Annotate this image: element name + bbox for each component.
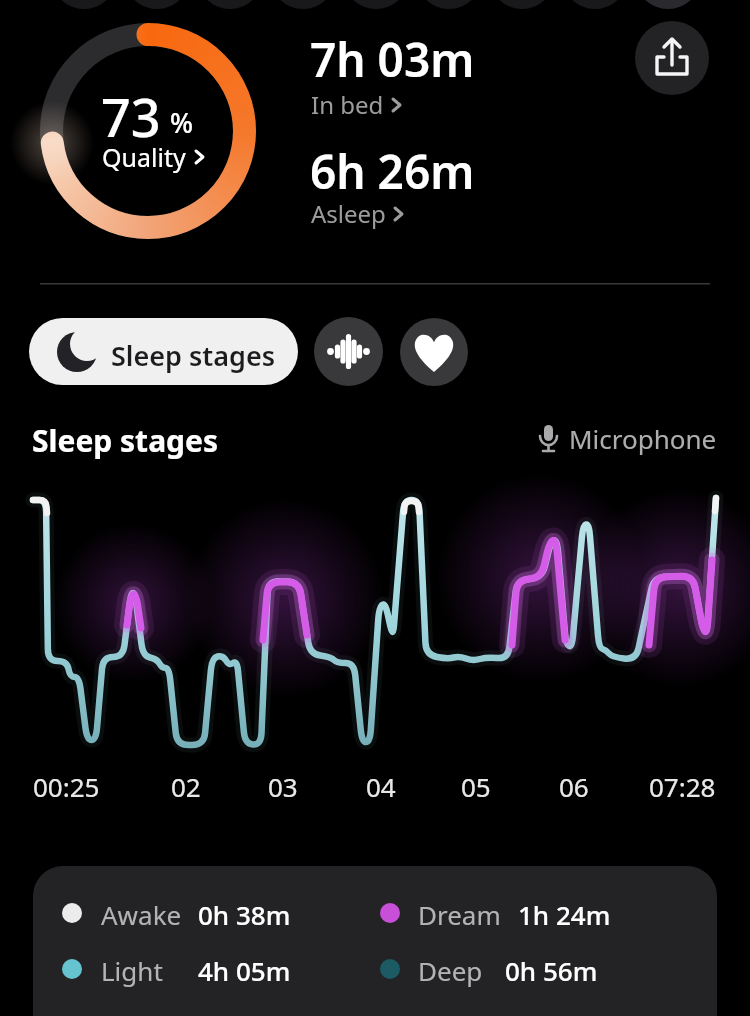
button[interactable]	[400, 318, 468, 386]
staticText: 0h 56m	[505, 953, 598, 988]
staticText: Light	[101, 953, 163, 988]
staticText: Sleep stages	[32, 420, 219, 461]
staticText: 03	[268, 769, 298, 804]
staticText: 02	[171, 769, 201, 804]
staticText: 00:25	[33, 769, 100, 804]
staticText: Awake	[101, 897, 182, 932]
staticText: 4h 05m	[198, 953, 291, 988]
staticText: 07:28	[649, 769, 716, 804]
staticText: 6h 26m	[310, 140, 475, 203]
staticText: 04	[366, 769, 396, 804]
staticText: 7h 03m	[310, 28, 475, 91]
staticText: 05	[461, 769, 491, 804]
staticText: 0h 38m	[198, 897, 291, 932]
button[interactable]: In bed	[311, 88, 402, 121]
button[interactable]: Quality	[102, 140, 206, 174]
staticText: %	[170, 104, 194, 141]
staticText: Sleep stages	[111, 337, 276, 374]
button[interactable]: Asleep	[311, 197, 404, 230]
button[interactable]: Microphone	[537, 421, 717, 456]
staticText: In bed	[311, 88, 384, 121]
staticText: Quality	[102, 140, 186, 174]
staticText: Asleep	[311, 197, 386, 230]
button[interactable]	[314, 317, 383, 386]
button[interactable]: Sleep stages	[29, 318, 298, 385]
staticText: Deep	[418, 953, 483, 988]
staticText: Microphone	[569, 421, 717, 456]
staticText: Dream	[418, 897, 501, 932]
staticText: 1h 24m	[518, 897, 611, 932]
staticText: 06	[559, 769, 589, 804]
button[interactable]	[635, 21, 709, 95]
staticText: 73	[101, 81, 161, 152]
